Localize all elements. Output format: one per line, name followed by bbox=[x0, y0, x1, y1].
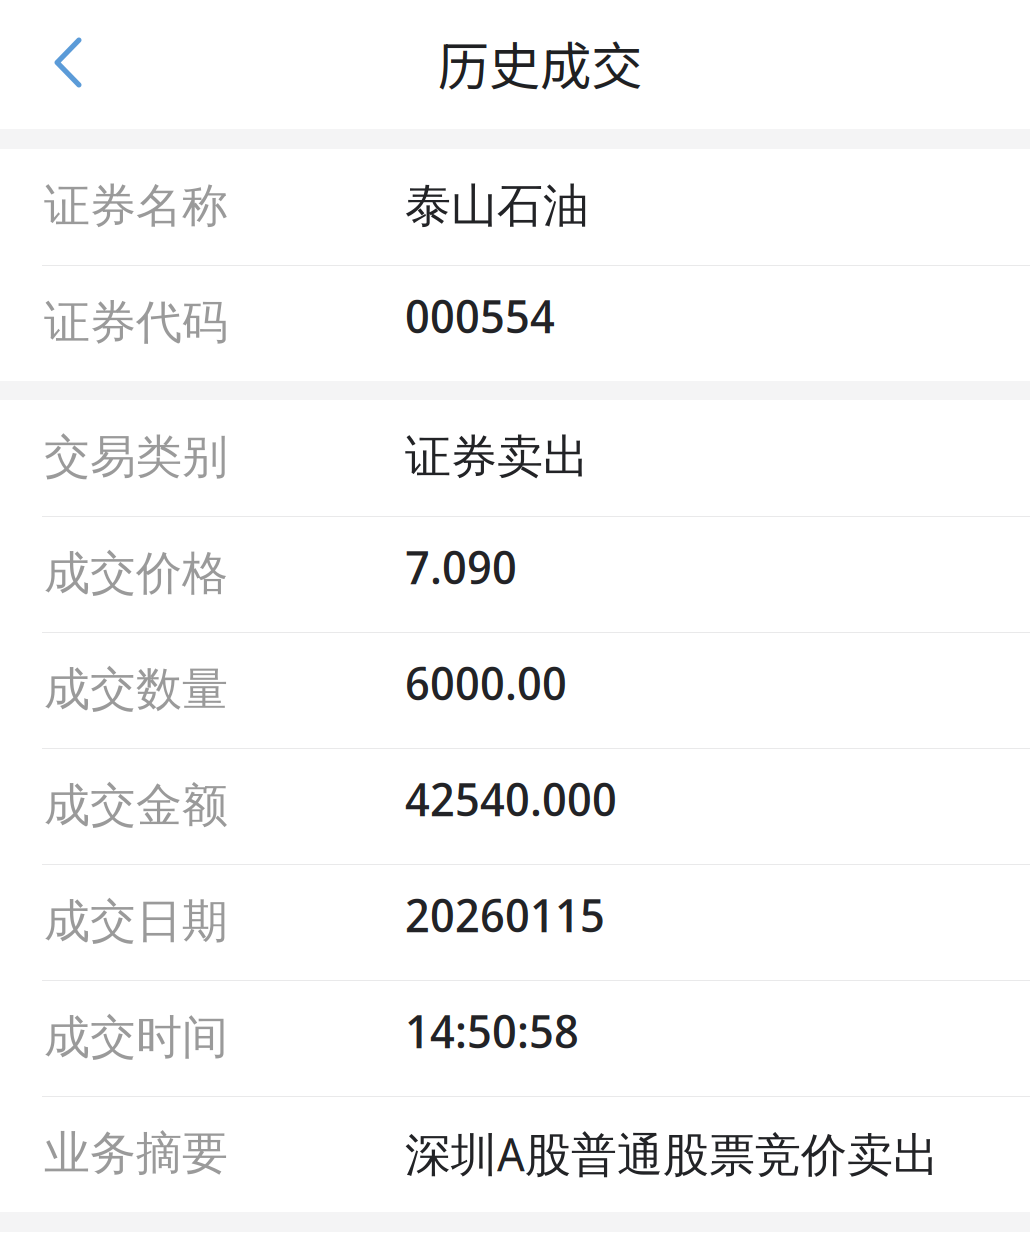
staticText: 7.090 bbox=[405, 535, 517, 598]
staticText: 深圳A股普通股票竞价卖出 bbox=[405, 1122, 939, 1185]
button[interactable]: 成交金额 bbox=[0, 748, 1030, 864]
staticText: 证券名称 bbox=[44, 177, 228, 235]
staticText: 6000.00 bbox=[405, 651, 567, 714]
button[interactable]: 成交时间 bbox=[0, 980, 1030, 1096]
staticText: 历史成交 bbox=[438, 25, 642, 100]
button[interactable]: 证券代码 bbox=[0, 265, 1030, 381]
staticText: 成交金额 bbox=[44, 776, 228, 834]
staticText: 成交日期 bbox=[44, 892, 228, 950]
button[interactable]: 证券名称 bbox=[0, 149, 1030, 265]
staticText: 交易类别 bbox=[44, 428, 228, 486]
staticText: 14:50:58 bbox=[405, 999, 579, 1062]
staticText: 000554 bbox=[405, 284, 555, 347]
button[interactable]: 业务摘要 bbox=[0, 1096, 1030, 1212]
staticText: 证券代码 bbox=[44, 293, 228, 351]
button[interactable]: Back bbox=[30, 18, 106, 110]
staticText: 成交数量 bbox=[44, 660, 228, 718]
staticText: 成交时间 bbox=[44, 1008, 228, 1066]
button[interactable]: 交易类别 bbox=[0, 400, 1030, 516]
staticText: 成交价格 bbox=[44, 544, 228, 602]
button[interactable]: 成交价格 bbox=[0, 516, 1030, 632]
button[interactable]: 成交日期 bbox=[0, 864, 1030, 980]
button[interactable]: 成交数量 bbox=[0, 632, 1030, 748]
staticText: 42540.000 bbox=[405, 767, 617, 830]
staticText: 泰山石油 bbox=[405, 177, 589, 235]
staticText: 20260115 bbox=[405, 883, 605, 946]
staticText: 业务摘要 bbox=[44, 1124, 228, 1182]
staticText: 证券卖出 bbox=[405, 428, 589, 486]
